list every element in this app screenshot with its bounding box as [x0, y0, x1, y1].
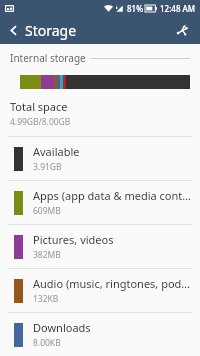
staticText: Pictures, videos: [33, 232, 114, 247]
staticText: 4.99GB/8.00GB: [10, 116, 71, 128]
staticText: 12:48 AM: [160, 3, 196, 14]
button[interactable]: Audio (music, ringtones, podcas..: [0, 269, 200, 312]
staticText: 3.91GB: [33, 161, 62, 173]
staticText: 81%: [127, 3, 143, 14]
staticText: Downloads: [33, 320, 91, 335]
button[interactable]: Storage: [6, 18, 79, 43]
staticText: Audio (music, ringtones, podcas..: [33, 276, 192, 291]
staticText: Apps (app data & media content): [33, 188, 192, 203]
staticText: Available: [33, 144, 80, 159]
staticText: Storage: [25, 21, 77, 40]
button[interactable]: Total space: [0, 95, 200, 136]
staticText: 8.00KB: [33, 337, 61, 349]
button[interactable]: Pictures, videos: [0, 225, 200, 268]
button[interactable]: Available: [0, 137, 200, 180]
button[interactable]: Downloads: [0, 313, 200, 356]
staticText: 609MB: [33, 205, 61, 217]
staticText: 132KB: [33, 293, 59, 305]
staticText: 382MB: [33, 249, 61, 261]
button[interactable]: USB connection: [170, 18, 194, 42]
staticText: Total space: [10, 99, 68, 114]
staticText: Internal storage: [10, 51, 86, 65]
button[interactable]: Apps (app data & media content): [0, 181, 200, 224]
